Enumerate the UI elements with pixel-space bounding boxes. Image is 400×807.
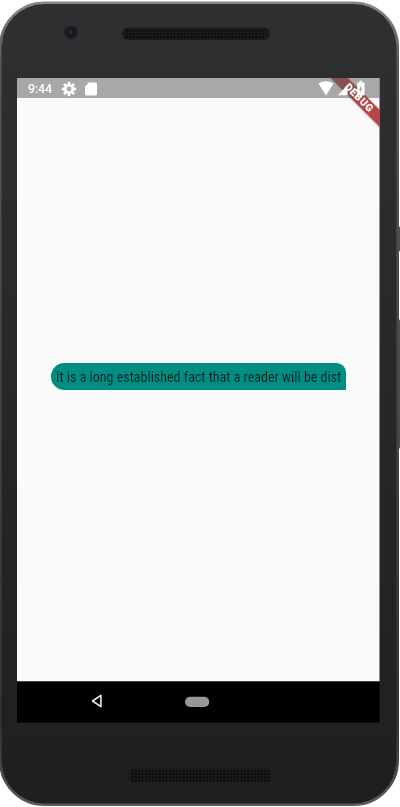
staticText: It is a long established fact that a rea… — [56, 369, 342, 385]
button[interactable] — [77, 682, 117, 722]
staticText: DEBUG — [342, 81, 376, 115]
staticText: 9:44 — [28, 81, 53, 96]
button[interactable]: It is a long established fact that a rea… — [51, 363, 346, 390]
button[interactable] — [177, 682, 217, 722]
